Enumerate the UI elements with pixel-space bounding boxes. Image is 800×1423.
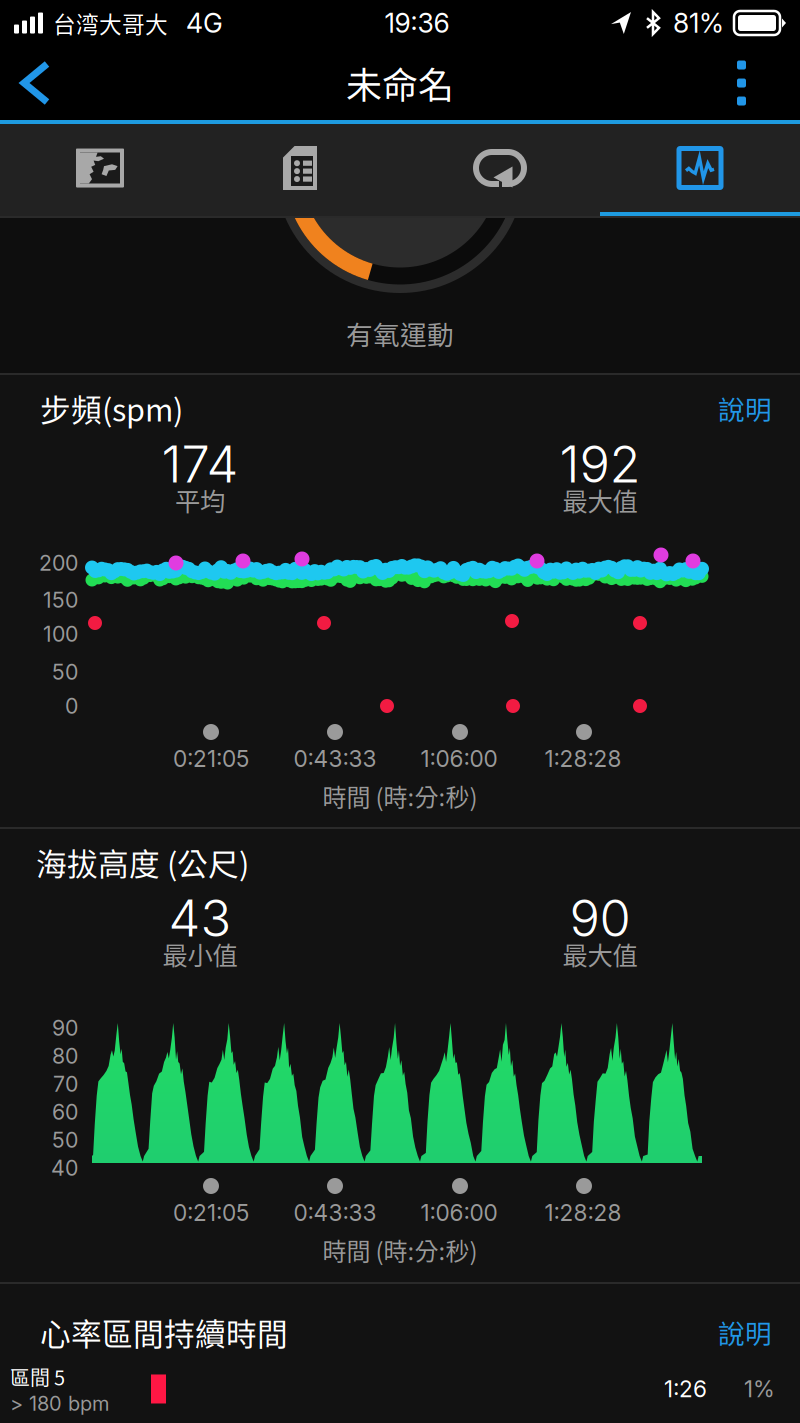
staticText: 海拔高度 (公尺) [36, 840, 249, 884]
staticText: 19:36 [384, 7, 449, 39]
staticText: 1:06:00 [420, 1199, 497, 1226]
staticText: 43 [168, 887, 231, 949]
staticText: 步頻(spm) [40, 386, 183, 430]
staticText: 心率區間持續時間 [40, 1310, 288, 1354]
staticText: 最小值 [162, 936, 237, 972]
staticText: 0:21:05 [173, 1199, 249, 1226]
button[interactable]: 說明 [718, 389, 772, 427]
staticText: 時間 (時:分:秒) [322, 1232, 477, 1267]
staticText: 說明 [718, 389, 772, 427]
staticText: 最大值 [562, 936, 637, 972]
button[interactable]: Details [200, 124, 400, 216]
staticText: 說明 [718, 1313, 772, 1351]
staticText: 90 [569, 887, 630, 949]
button[interactable]: Charts [600, 124, 800, 216]
staticText: 174 [161, 433, 238, 495]
staticText: 50 [52, 1127, 78, 1153]
staticText: 70 [53, 1071, 78, 1097]
staticText: 81% [673, 7, 724, 39]
staticText: 最大值 [562, 482, 637, 518]
staticText: 4G [186, 7, 223, 39]
staticText: 0:21:05 [173, 745, 249, 772]
staticText: 1:28:28 [544, 745, 621, 772]
staticText: 平均 [175, 482, 225, 518]
staticText: 40 [51, 1155, 78, 1181]
staticText: 0:43:33 [293, 745, 376, 772]
staticText: 區間 5 [10, 1362, 65, 1391]
staticText: 1:26 [664, 1375, 707, 1403]
staticText: 80 [52, 1043, 78, 1069]
staticText: 時間 (時:分:秒) [322, 778, 477, 813]
button[interactable]: Back [0, 46, 75, 120]
staticText: 1:28:28 [544, 1199, 621, 1226]
staticText: 1% [744, 1375, 775, 1403]
staticText: 有氧運動 [346, 314, 454, 353]
staticText: 150 [43, 587, 78, 613]
staticText: 1:06:00 [420, 745, 497, 772]
staticText: 台湾大哥大 [53, 7, 168, 39]
staticText: 50 [52, 659, 78, 685]
staticText: 未命名 [346, 57, 454, 109]
staticText: 60 [52, 1099, 78, 1125]
button[interactable]: 說明 [718, 1313, 772, 1351]
button[interactable]: Map [0, 124, 200, 216]
staticText: 90 [52, 1015, 78, 1041]
staticText: 0 [65, 693, 78, 719]
staticText: 192 [559, 433, 640, 495]
staticText: > 180 bpm [10, 1391, 109, 1416]
button[interactable]: More options [707, 42, 800, 123]
staticText: 0:43:33 [293, 1199, 376, 1226]
staticText: 100 [43, 621, 78, 647]
staticText: 200 [39, 550, 78, 576]
button[interactable]: Laps [400, 124, 600, 216]
